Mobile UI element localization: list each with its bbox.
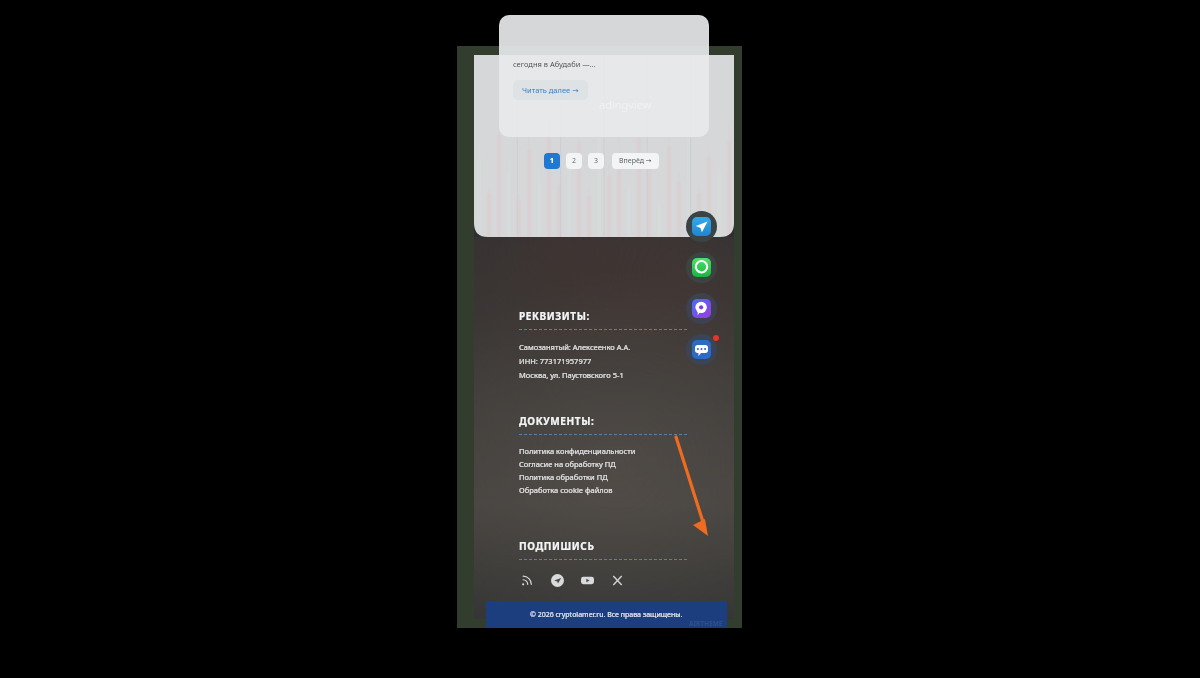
- button[interactable]: Вперёд →: [612, 153, 659, 169]
- button[interactable]: 2: [566, 153, 582, 169]
- button[interactable]: Chat: [686, 334, 717, 365]
- button[interactable]: X: [609, 572, 625, 588]
- staticText: Самозанятый: Алексеенко А.А.: [519, 342, 631, 352]
- staticText: Обработка cookie файлов: [519, 485, 613, 495]
- staticText: AIRTHEME: [689, 619, 723, 628]
- button[interactable]: Политика обработки ПД: [519, 472, 608, 482]
- button[interactable]: Согласие на обработку ПД: [519, 459, 616, 469]
- staticText: Читать далее →: [522, 85, 579, 95]
- staticText: Москва, ул. Паустовского 5-1: [519, 370, 624, 380]
- staticText: РЕКВИЗИТЫ:: [519, 309, 590, 323]
- staticText: Согласие на обработку ПД: [519, 459, 616, 469]
- button[interactable]: WhatsApp: [686, 252, 717, 283]
- staticText: Вперёд →: [619, 156, 652, 166]
- button[interactable]: Читать далее →: [513, 80, 588, 100]
- staticText: ДОКУМЕНТЫ:: [519, 414, 595, 428]
- button[interactable]: 1: [544, 153, 560, 169]
- button[interactable]: YouTube: [579, 572, 595, 588]
- staticText: ПОДПИШИСЬ: [519, 539, 595, 553]
- button[interactable]: Политика конфиденциальности: [519, 446, 636, 456]
- button[interactable]: RSS: [519, 572, 535, 588]
- button[interactable]: Viber: [686, 293, 717, 324]
- staticText: 3: [594, 156, 599, 166]
- staticText: © 2026 cryptolamer.ru. Все права защищен…: [530, 610, 683, 620]
- staticText: 2: [572, 156, 577, 166]
- button[interactable]: Telegram: [686, 211, 717, 242]
- button[interactable]: 3: [588, 153, 604, 169]
- button[interactable]: Обработка cookie файлов: [519, 485, 613, 495]
- button[interactable]: Telegram: [549, 572, 565, 588]
- staticText: Политика обработки ПД: [519, 472, 608, 482]
- staticText: 1: [550, 156, 555, 166]
- staticText: сегодня в Абудаби —…: [513, 59, 596, 69]
- staticText: Политика конфиденциальности: [519, 446, 636, 456]
- staticText: ИНН: 773171957977: [519, 356, 592, 366]
